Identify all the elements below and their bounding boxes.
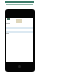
other: Home [18,65,21,68]
